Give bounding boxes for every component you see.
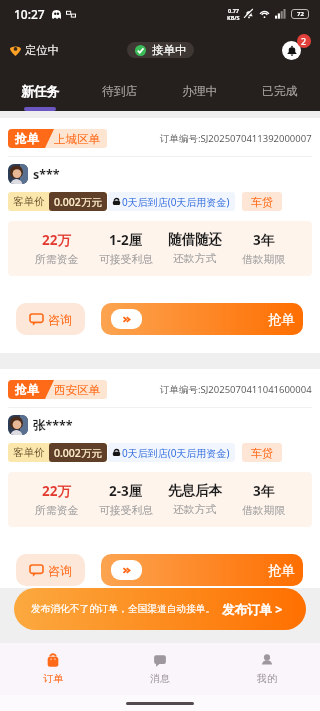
staticText: 抢单 xyxy=(15,131,39,146)
button[interactable]: 咨询 xyxy=(16,303,85,335)
staticText: 发布消化不了的订单，全国渠道自动接单。 xyxy=(31,603,216,615)
staticText: 待到店 xyxy=(102,84,138,99)
button[interactable]: 咨询 xyxy=(16,554,85,586)
staticText: 客单价 xyxy=(13,195,45,208)
staticText: 还款方式 xyxy=(173,503,217,517)
staticText: 3年 xyxy=(253,482,275,500)
staticText: KB/S xyxy=(227,14,240,21)
staticText: 客单价 xyxy=(13,446,45,459)
staticText: 所需资金 xyxy=(35,504,79,518)
button[interactable]: 通知 xyxy=(282,34,311,60)
staticText: 办理中 xyxy=(182,84,218,99)
staticText: 可接受利息 xyxy=(99,504,153,518)
button[interactable]: 抢单 xyxy=(101,554,303,586)
staticText: 订单编号:SJ2025070411041600004 xyxy=(160,383,312,396)
staticText: 随借随还 xyxy=(168,231,222,248)
staticText: 2-3厘 xyxy=(109,482,143,500)
staticText: 可接受利息 xyxy=(99,253,153,267)
staticText: 10:27 xyxy=(14,6,45,22)
staticText: 抢单 xyxy=(268,311,295,328)
staticText: 所需资金 xyxy=(35,253,79,267)
button[interactable]: 定位中 xyxy=(10,43,59,57)
staticText: 0天后到店(0天后用资金) xyxy=(122,446,230,460)
staticText: 3年 xyxy=(253,231,275,249)
staticText: 咨询 xyxy=(48,312,72,327)
staticText: 1-2厘 xyxy=(109,231,143,249)
button[interactable]: 发布消化不了的订单，全国渠道自动接单。 xyxy=(14,588,306,630)
staticText: 新任务 xyxy=(21,84,60,100)
staticText: 0.77 xyxy=(228,7,239,14)
staticText: 22万 xyxy=(42,231,71,249)
staticText: 22万 xyxy=(42,482,71,500)
button[interactable]: 接单中 xyxy=(127,42,194,58)
staticText: 接单中 xyxy=(152,43,187,57)
staticText: s*** xyxy=(33,166,60,183)
staticText: 0.002万元 xyxy=(54,446,102,460)
staticText: 消息 xyxy=(150,672,170,685)
button[interactable]: 办理中 xyxy=(160,72,240,111)
staticText: 张**** xyxy=(33,417,73,434)
staticText: 订单编号:SJ2025070411392000007 xyxy=(160,132,312,145)
staticText: 抢单 xyxy=(15,382,39,397)
button[interactable]: 新任务 xyxy=(0,72,80,111)
staticText: 借款期限 xyxy=(242,253,286,267)
staticText: 订单 xyxy=(43,672,63,685)
button[interactable]: 抢单 xyxy=(101,303,303,335)
button[interactable]: 待到店 xyxy=(80,72,160,111)
staticText: 定位中 xyxy=(25,43,59,57)
staticText: 发布订单 > xyxy=(222,601,283,618)
staticText: 车贷 xyxy=(251,195,273,209)
button[interactable]: 消息 xyxy=(106,643,213,695)
staticText: 西安区单 xyxy=(54,383,100,397)
staticText: 车贷 xyxy=(251,446,273,460)
staticText: 0天后到店(0天后用资金) xyxy=(122,195,230,209)
staticText: 上城区单 xyxy=(54,132,100,146)
staticText: 0.002万元 xyxy=(54,195,102,209)
staticText: 借款期限 xyxy=(242,504,286,518)
staticText: 72 xyxy=(297,10,304,18)
button[interactable]: 订单 xyxy=(0,643,106,695)
staticText: 抢单 xyxy=(268,562,295,579)
staticText: 先息后本 xyxy=(168,482,222,499)
staticText: 还款方式 xyxy=(173,252,217,266)
button[interactable]: 已完成 xyxy=(240,72,320,111)
button[interactable]: 我的 xyxy=(213,643,320,695)
staticText: 已完成 xyxy=(262,84,298,99)
staticText: 我的 xyxy=(257,672,277,685)
staticText: 2 xyxy=(301,35,307,47)
staticText: 咨询 xyxy=(48,563,72,578)
